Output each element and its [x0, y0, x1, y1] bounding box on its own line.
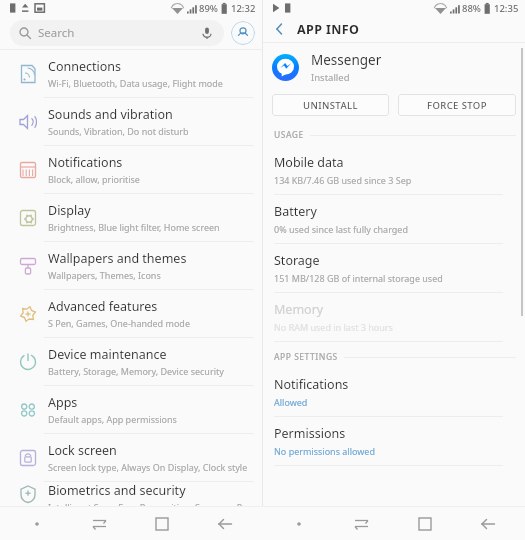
button[interactable]: Voice search — [199, 25, 215, 41]
button[interactable]: Back — [193, 507, 256, 540]
button[interactable]: UNINSTALL — [272, 94, 389, 116]
staticText: Default apps, App permissions — [48, 413, 177, 425]
button[interactable]: More options — [268, 507, 330, 540]
staticText: Search — [38, 25, 75, 41]
button[interactable]: Mobile data — [263, 146, 525, 195]
staticText: Device maintenance — [48, 346, 167, 363]
button[interactable]: Apps — [0, 386, 262, 433]
button[interactable]: Memory — [263, 293, 525, 342]
staticText: Sounds and vibration — [48, 106, 173, 123]
staticText: Sounds, Vibration, Do not disturb — [48, 125, 189, 137]
button[interactable]: Back — [263, 16, 297, 42]
staticText: Notifications — [274, 376, 349, 393]
staticText: Advanced features — [48, 298, 158, 315]
staticText: FORCE STOP — [427, 99, 487, 112]
button[interactable]: Search — [10, 20, 224, 46]
button[interactable]: FORCE STOP — [398, 94, 516, 116]
button[interactable]: Wallpapers and themes — [0, 242, 262, 289]
button[interactable]: Permissions — [263, 417, 525, 466]
button[interactable]: Notifications — [0, 146, 262, 193]
button[interactable]: Display — [0, 194, 262, 241]
staticText: Lock screen — [48, 442, 117, 459]
staticText: 12:35 — [494, 2, 519, 15]
staticText: Block, allow, prioritise — [48, 173, 140, 185]
staticText: Storage — [274, 252, 320, 269]
button[interactable]: Connections — [0, 50, 262, 97]
staticText: Intelligent Scan, Face Recognition, Sams… — [48, 501, 249, 506]
staticText: 12:32 — [231, 2, 256, 15]
staticText: Wi-Fi, Bluetooth, Data usage, Flight mod… — [48, 77, 223, 89]
staticText: Battery, Storage, Memory, Device securit… — [48, 365, 224, 377]
staticText: Display — [48, 202, 91, 219]
staticText: UNINSTALL — [303, 99, 358, 112]
staticText: Wallpapers, Themes, Icons — [48, 269, 161, 281]
staticText: Biometrics and security — [48, 482, 186, 499]
staticText: Brightness, Blue light filter, Home scre… — [48, 221, 220, 233]
button[interactable]: Notifications — [263, 368, 525, 417]
button[interactable]: More options — [6, 507, 68, 540]
staticText: No permissions allowed — [274, 445, 375, 457]
staticText: Screen lock type, Always On Display, Clo… — [48, 461, 248, 473]
button[interactable]: Back — [456, 507, 519, 540]
staticText: 89% — [199, 2, 218, 15]
staticText: Mobile data — [274, 154, 344, 171]
staticText: No RAM used in last 3 hours — [274, 321, 393, 333]
staticText: S Pen, Games, One-handed mode — [48, 317, 190, 329]
staticText: 134 KB/7.46 GB used since 3 Sep — [274, 174, 412, 186]
staticText: USAGE — [274, 129, 304, 141]
staticText: Connections — [48, 58, 121, 75]
button[interactable]: Lock screen — [0, 434, 262, 481]
staticText: Apps — [48, 394, 78, 411]
staticText: APP SETTINGS — [274, 351, 338, 363]
staticText: 0% used since last fully charged — [274, 223, 408, 235]
staticText: Battery — [274, 203, 317, 220]
staticText: Permissions — [274, 425, 346, 442]
button[interactable]: Recents — [330, 507, 393, 540]
button[interactable]: Recents — [68, 507, 130, 540]
staticText: APP INFO — [297, 21, 360, 38]
button[interactable]: Biometrics and security — [0, 482, 262, 506]
button[interactable]: Device maintenance — [0, 338, 262, 385]
staticText: Installed — [311, 71, 350, 84]
staticText: 151 MB/128 GB of internal storage used — [274, 272, 443, 284]
button[interactable]: Storage — [263, 244, 525, 293]
button[interactable]: Advanced features — [0, 290, 262, 337]
staticText: Notifications — [48, 154, 123, 171]
button[interactable]: Sounds and vibration — [0, 98, 262, 145]
staticText: 88% — [462, 2, 481, 15]
staticText: Messenger — [311, 51, 382, 69]
button[interactable]: Battery — [263, 195, 525, 244]
staticText: Wallpapers and themes — [48, 250, 187, 267]
button[interactable]: Home — [130, 507, 193, 540]
button[interactable]: Home — [393, 507, 456, 540]
button[interactable]: Account — [231, 21, 255, 45]
staticText: Memory — [274, 301, 324, 318]
staticText: Allowed — [274, 396, 308, 408]
